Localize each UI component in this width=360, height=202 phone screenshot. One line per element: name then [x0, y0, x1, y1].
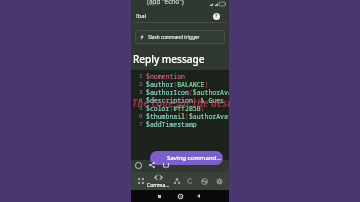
staticText: $author[BALANCE]: [146, 80, 209, 88]
staticText: $description[ & Gues: [146, 96, 225, 104]
staticText: 2: [139, 80, 143, 88]
button[interactable]: Saving command...: [150, 151, 223, 165]
staticText: 6: [139, 112, 143, 120]
staticText: $authorIcon[$authorAvat: [146, 88, 229, 96]
button[interactable]: Back: [192, 190, 204, 202]
staticText: Comma...: [147, 182, 169, 189]
staticText: $color[#ff2B5B]: [146, 104, 205, 112]
button[interactable]: Apps: [133, 172, 149, 190]
staticText: 5: [139, 104, 143, 112]
staticText: 7: [139, 120, 143, 128]
staticText: 4: [139, 96, 143, 104]
staticText: $thumbnail[$authorAvata: [146, 112, 229, 120]
button[interactable]: Hierarchy: [169, 172, 185, 190]
button[interactable]: Share: [148, 161, 156, 169]
button[interactable]: Settings: [211, 172, 227, 190]
staticText: $addTimestamp: [146, 120, 197, 128]
button[interactable]: Home: [174, 190, 186, 202]
staticText: The code for the description: [132, 96, 230, 110]
button[interactable]: Recents: [153, 190, 165, 202]
button[interactable]: !bal: [131, 10, 229, 22]
button[interactable]: Commands: [147, 172, 169, 190]
button[interactable]: Help: [213, 13, 220, 20]
staticText: $nomention: [146, 72, 186, 80]
button[interactable]: Globe: [196, 172, 212, 190]
staticText: Slash command trigger: [148, 34, 200, 40]
staticText: Saving command...: [167, 154, 222, 162]
staticText: (add "echo"): [147, 0, 184, 6]
button[interactable]: Help: [134, 161, 142, 169]
staticText: 3: [139, 88, 143, 96]
staticText: Reply message: [133, 52, 205, 66]
staticText: ?: [215, 13, 218, 20]
staticText: !bal: [136, 12, 147, 20]
button[interactable]: Slash command trigger: [135, 30, 225, 44]
button[interactable]: Save: [162, 161, 170, 169]
button[interactable]: Refresh: [182, 172, 198, 190]
staticText: Agree: [150, 2, 159, 6]
staticText: 1: [139, 72, 143, 80]
